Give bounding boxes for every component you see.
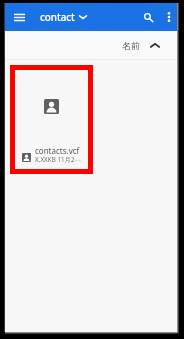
button[interactable]: contact [40,3,87,31]
staticText: 名前 [122,40,140,51]
staticText: contact [40,11,75,24]
button[interactable]: Navigation menu [6,6,32,28]
button[interactable]: contacts.vcf [10,65,93,174]
staticText: X.XXKB 11月2⋯ [35,155,81,164]
button[interactable]: 名前 [122,31,160,60]
button[interactable]: More options [157,6,180,28]
button[interactable]: Search [137,6,159,28]
staticText: contacts.vcf [35,145,80,156]
